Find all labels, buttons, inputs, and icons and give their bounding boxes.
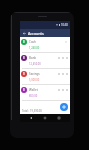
- button[interactable]: $: [20, 37, 70, 53]
- staticText: Cash: [29, 40, 36, 44]
- staticText: 5,000.00: [29, 78, 40, 82]
- staticText: $: [23, 40, 25, 44]
- button[interactable]: $: [20, 53, 70, 69]
- staticText: $: [23, 56, 25, 60]
- button[interactable]: Back: [22, 31, 27, 36]
- button[interactable]: Back: [28, 115, 34, 121]
- staticText: 10:30: [61, 23, 68, 27]
- staticText: Total:: [22, 109, 29, 113]
- staticText: 19,490.00: [30, 109, 42, 113]
- staticText: 12,450.00: [29, 62, 41, 66]
- button[interactable]: Recents: [56, 115, 62, 121]
- button[interactable]: $: [20, 85, 70, 101]
- staticText: Savings: [29, 72, 40, 76]
- staticText: $: [23, 88, 25, 92]
- staticText: $: [23, 72, 25, 76]
- button[interactable]: $: [20, 69, 70, 85]
- button[interactable]: Home: [42, 115, 48, 121]
- staticText: Accounts: [28, 31, 44, 36]
- button[interactable]: Add account: [60, 103, 68, 111]
- staticText: 1,240.00: [29, 46, 40, 50]
- staticText: Wallet: [29, 88, 38, 92]
- staticText: Bank: [29, 56, 37, 60]
- staticText: 800.00: [29, 94, 38, 98]
